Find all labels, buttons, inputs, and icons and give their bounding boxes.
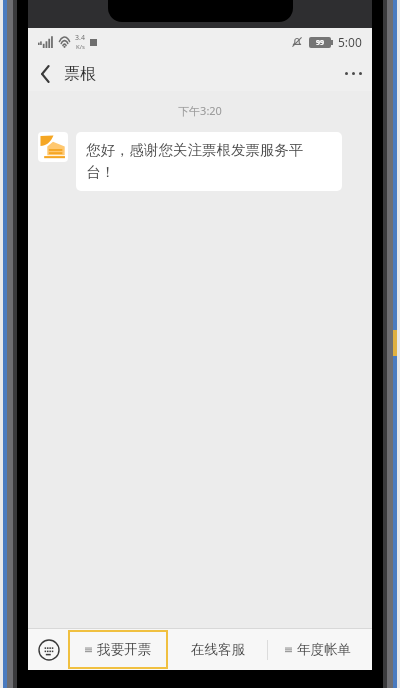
staticText: 在线客服	[191, 641, 245, 658]
button[interactable]: 在线客服	[168, 629, 267, 670]
staticText: 我要开票	[97, 641, 151, 658]
staticText: K/s	[76, 43, 85, 51]
button[interactable]: More options	[334, 56, 372, 91]
button[interactable]: 年度帐单	[268, 629, 368, 670]
staticText: 您好，感谢您关注票根发票服务平台！	[86, 141, 332, 182]
staticText: 3.4	[75, 33, 85, 43]
button[interactable]: 票根 avatar	[38, 132, 68, 162]
staticText: 5:00	[338, 34, 362, 50]
button[interactable]: 我要开票	[68, 630, 168, 669]
button[interactable]: Back	[28, 57, 62, 91]
staticText: 下午3:20	[28, 103, 372, 118]
staticText: 年度帐单	[297, 641, 351, 658]
staticText: 99	[316, 38, 325, 48]
button[interactable]: Keyboard	[36, 637, 62, 663]
staticText: 票根	[64, 64, 96, 84]
